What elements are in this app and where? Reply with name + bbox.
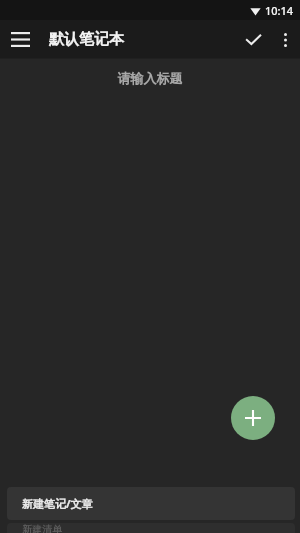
button[interactable]: Open navigation drawer bbox=[5, 24, 36, 55]
staticText: 新建笔记/文章 bbox=[22, 496, 93, 511]
staticText: 请输入标题 bbox=[0, 70, 300, 86]
button[interactable]: Save bbox=[236, 23, 270, 57]
button[interactable]: New note bbox=[231, 396, 275, 440]
staticText: 10:14 bbox=[265, 3, 294, 18]
button[interactable]: 新建清单 bbox=[7, 523, 295, 533]
staticText: 默认笔记本 bbox=[49, 30, 124, 49]
button[interactable]: 新建笔记/文章 bbox=[7, 487, 295, 520]
staticText: 新建清单 bbox=[22, 523, 62, 533]
button[interactable]: More options bbox=[270, 25, 300, 55]
